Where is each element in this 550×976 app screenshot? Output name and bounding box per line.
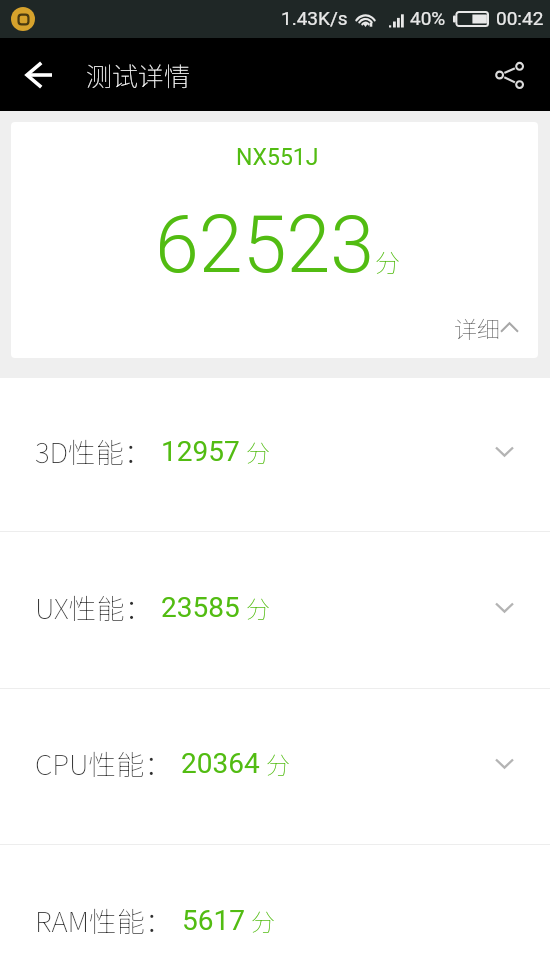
button[interactable]: UX性能： <box>0 532 550 688</box>
button[interactable]: Share <box>484 42 542 108</box>
staticText: 3D性能： <box>35 431 153 472</box>
staticText: 62523 <box>155 199 375 292</box>
staticText: 00:42 <box>496 7 544 29</box>
staticText: 23585 <box>161 591 240 624</box>
staticText: 分 <box>246 590 270 625</box>
staticText: UX性能： <box>35 587 153 628</box>
staticText: 5617 <box>182 904 245 937</box>
button[interactable]: 详细 <box>454 311 519 344</box>
staticText: 分 <box>375 243 401 279</box>
staticText: 20364 <box>181 747 260 780</box>
button[interactable]: NX551J <box>11 122 538 358</box>
button[interactable]: RAM性能： <box>0 845 550 976</box>
button[interactable]: Back <box>6 42 72 108</box>
staticText: 详细 <box>454 311 500 344</box>
staticText: 测试详情 <box>86 56 191 94</box>
staticText: 分 <box>266 746 290 781</box>
button[interactable]: 3D性能： <box>0 378 550 531</box>
staticText: 分 <box>246 434 270 469</box>
staticText: RAM性能： <box>35 900 174 941</box>
staticText: 1.43K/s <box>281 7 348 29</box>
staticText: 12957 <box>161 435 240 468</box>
staticText: 40% <box>410 7 446 29</box>
staticText: NX551J <box>236 144 319 171</box>
button[interactable]: CPU性能： <box>0 689 550 844</box>
staticText: CPU性能： <box>35 743 173 784</box>
staticText: 分 <box>251 903 275 938</box>
